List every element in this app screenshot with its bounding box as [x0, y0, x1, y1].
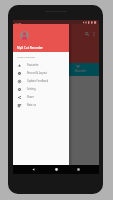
- button[interactable]: Update Feedback: [13, 77, 69, 85]
- staticText: Mp3 Cut Recorder: [17, 46, 43, 50]
- staticText: Share: [27, 95, 34, 99]
- button[interactable]: Record & Layout: [13, 69, 69, 77]
- button[interactable]: Setting: [13, 85, 69, 93]
- staticText: Recorder: [75, 69, 87, 73]
- button[interactable]: Search: [83, 30, 91, 38]
- staticText: Update Feedback: [27, 79, 49, 83]
- staticText: Setting: [27, 87, 36, 91]
- staticText: Favourite: [27, 63, 39, 67]
- button[interactable]: Mp3 Cut Recorder: [13, 20, 69, 52]
- staticText: Rate us: [27, 103, 36, 107]
- staticText: Record & Layout: [27, 71, 47, 75]
- button[interactable]: Rate us: [13, 101, 69, 109]
- button[interactable]: Favourite: [13, 61, 69, 69]
- staticText: 12:30: [15, 21, 22, 24]
- button[interactable]: Home: [52, 165, 60, 174]
- button[interactable]: Share: [13, 93, 69, 101]
- button[interactable]: Back: [29, 165, 37, 174]
- button[interactable]: More options: [90, 30, 98, 38]
- button[interactable]: Recent apps: [74, 165, 82, 174]
- staticText: Audio Collection: [17, 55, 36, 58]
